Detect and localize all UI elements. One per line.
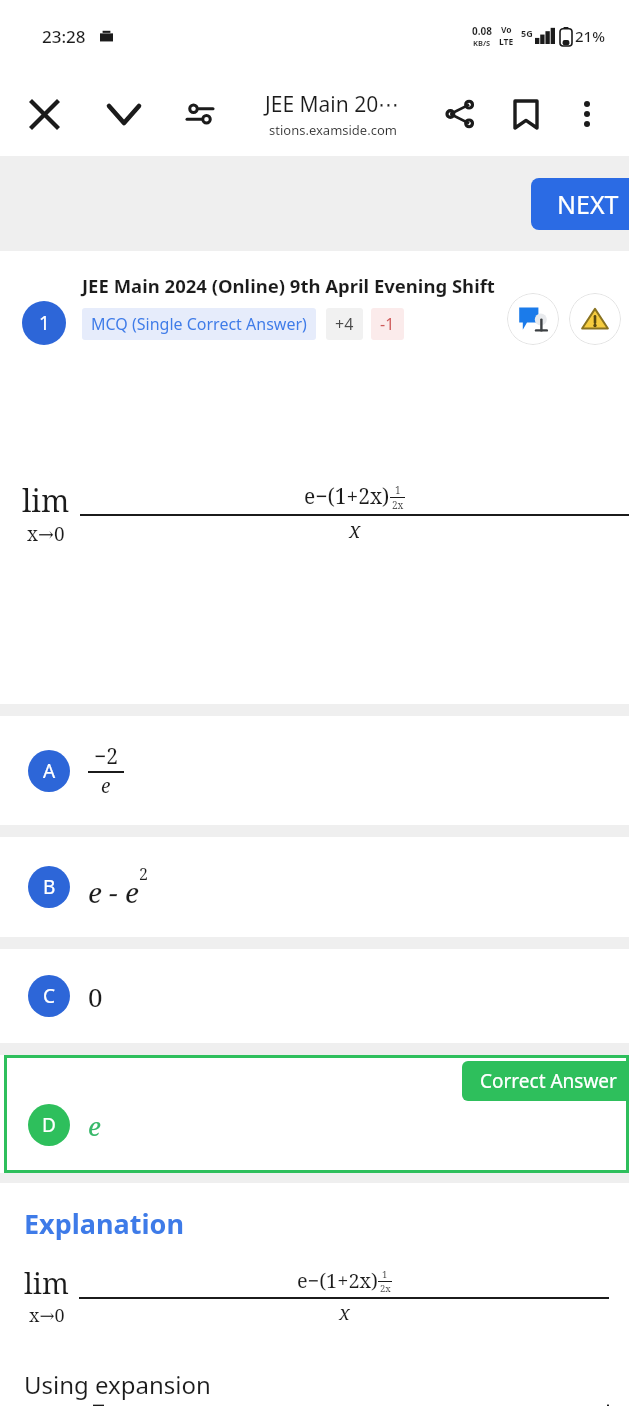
staticText: stions.examside.com	[269, 121, 397, 139]
staticText: LTE	[499, 36, 514, 48]
button[interactable]: Correct Answer	[4, 1055, 629, 1173]
button[interactable]: Bookmark	[501, 89, 551, 139]
staticText: x	[349, 516, 361, 545]
staticText: 0.08	[472, 24, 492, 38]
staticText: Vo	[501, 24, 512, 36]
staticText: A	[43, 758, 56, 784]
staticText: x	[339, 1299, 350, 1326]
staticText: JEE Main 20⋯	[265, 90, 400, 119]
staticText: NEXT	[557, 187, 619, 221]
button[interactable]: Close	[18, 88, 70, 140]
button[interactable]: More options	[563, 90, 611, 138]
staticText: x→0	[27, 521, 65, 547]
staticText: 21%	[575, 26, 605, 46]
staticText: MCQ (Single Correct Answer)	[91, 313, 307, 335]
staticText: −2	[94, 742, 118, 771]
staticText: e−(1+2x)	[297, 1267, 378, 1294]
button[interactable]: JEE Main 20⋯	[238, 90, 427, 139]
staticText: 1	[395, 483, 401, 497]
staticText: 23:28	[42, 25, 86, 48]
button[interactable]: Report issue	[569, 293, 621, 345]
staticText: e	[101, 773, 111, 799]
staticText: 0	[88, 979, 103, 1014]
button[interactable]: MCQ (Single Correct Answer)	[82, 308, 316, 340]
staticText: +4	[335, 313, 354, 335]
staticText: e	[88, 1108, 101, 1143]
staticText: JEE Main 2024 (Online) 9th April Evening…	[82, 273, 495, 298]
staticText: D	[42, 1112, 56, 1138]
button[interactable]: NEXT	[531, 178, 629, 230]
button[interactable]: Collapse	[98, 88, 150, 140]
button[interactable]: Translate	[507, 293, 559, 345]
button[interactable]: A	[0, 716, 629, 825]
staticText: 5G	[521, 27, 533, 39]
staticText: Using expansion	[24, 1368, 211, 1401]
button[interactable]: C	[0, 949, 629, 1043]
button[interactable]: Share	[435, 89, 485, 139]
button[interactable]: B	[0, 837, 629, 937]
staticText: Explanation	[24, 1205, 184, 1242]
staticText: lim	[22, 480, 70, 521]
staticText: 2x	[392, 498, 404, 512]
staticText: lim	[24, 1264, 69, 1303]
button[interactable]: Page settings	[174, 88, 226, 140]
staticText: B	[43, 874, 56, 900]
staticText: x→0	[29, 1303, 65, 1328]
staticText: 2	[139, 863, 148, 885]
staticText: e−(1+2x)	[304, 482, 390, 511]
staticText: 2x	[380, 1282, 391, 1295]
staticText: C	[43, 983, 56, 1009]
staticText: Correct Answer	[480, 1068, 617, 1094]
staticText: e − e	[88, 873, 139, 911]
staticText: 1	[382, 1268, 388, 1281]
staticText: -1	[380, 313, 395, 335]
staticText: 1	[39, 310, 50, 336]
staticText: KB/S	[473, 38, 491, 48]
